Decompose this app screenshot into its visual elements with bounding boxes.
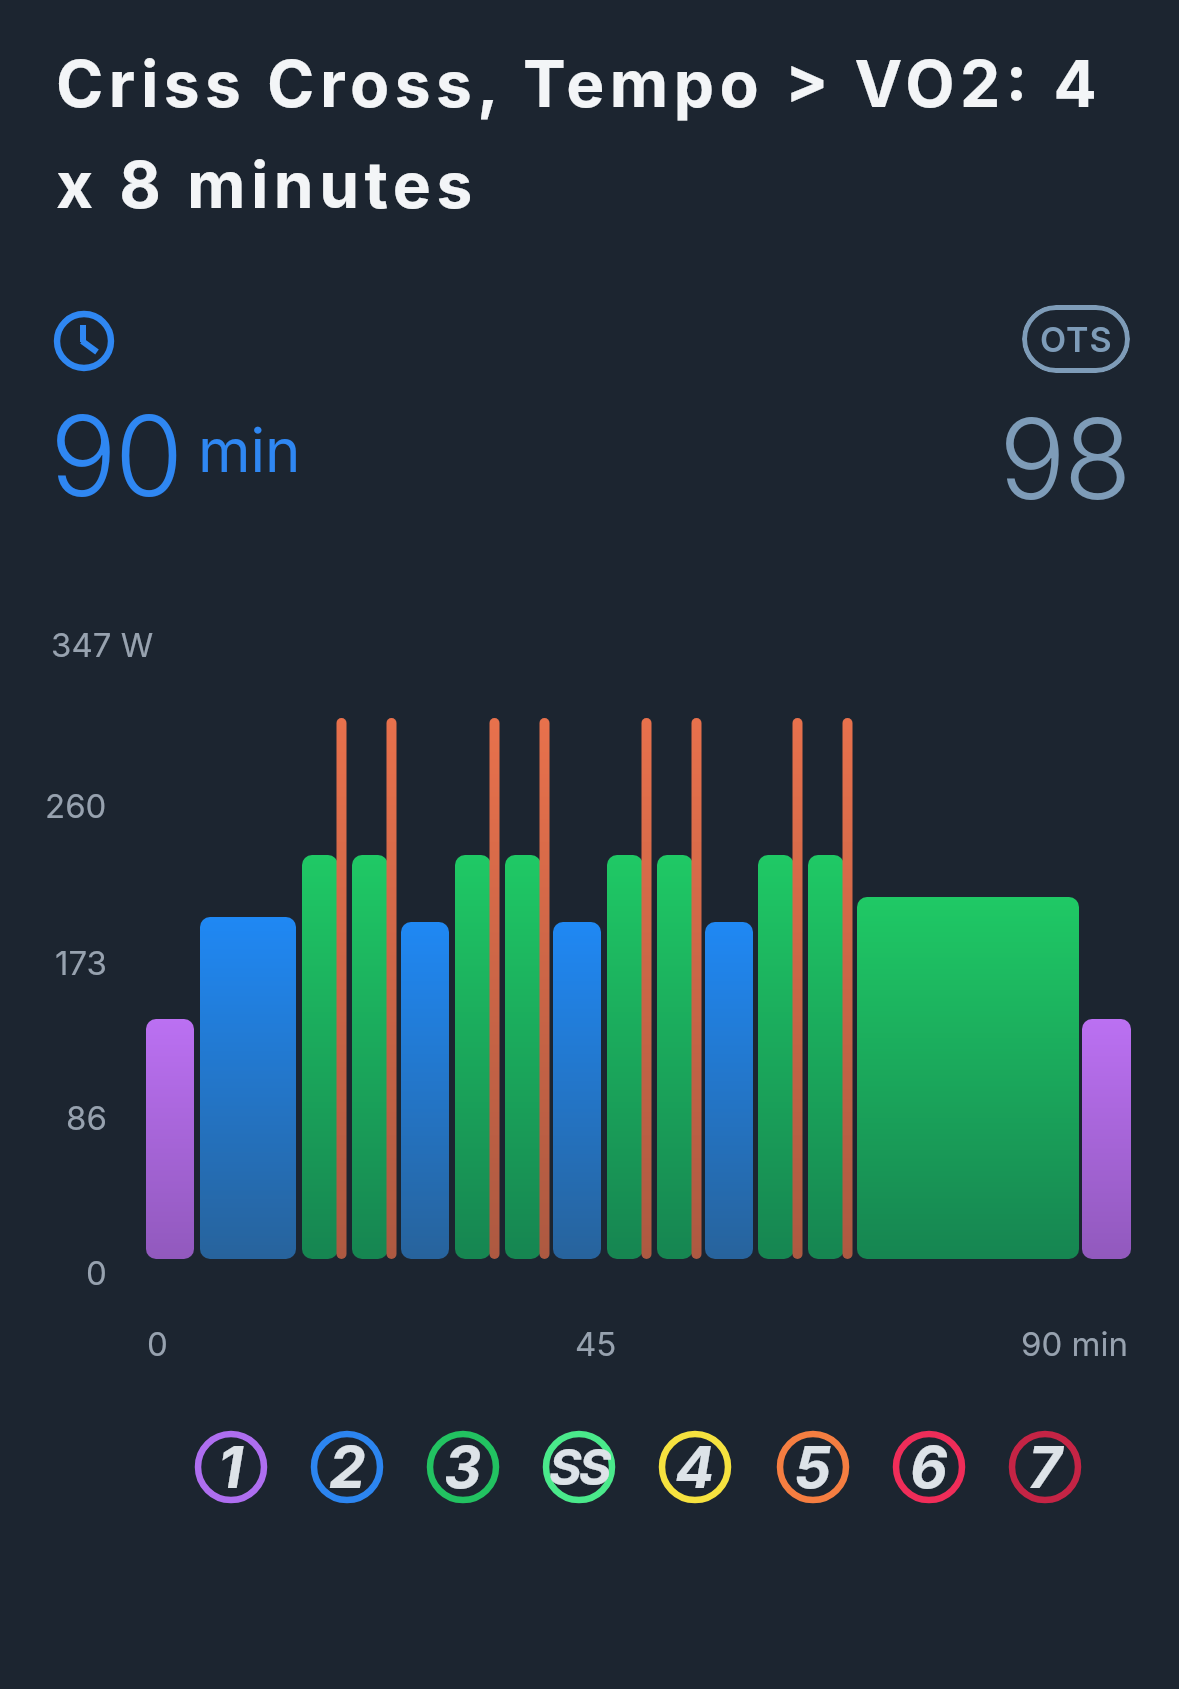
button[interactable]: 7 [1007, 1429, 1083, 1505]
staticText: 3 [444, 1432, 482, 1502]
staticText: 98 [999, 391, 1130, 525]
staticText: 5 [794, 1432, 832, 1502]
button[interactable]: 3 [425, 1429, 501, 1505]
staticText: 2 [329, 1432, 366, 1502]
staticText: 0 [147, 1324, 168, 1364]
staticText: 347 W [51, 625, 154, 665]
staticText: 6 [910, 1432, 948, 1502]
staticText: 7 [1028, 1432, 1062, 1502]
staticText: 1 [218, 1432, 244, 1502]
staticText: 90 min [1021, 1324, 1128, 1364]
staticText: 45 [575, 1324, 617, 1364]
staticText: 173 [55, 943, 107, 983]
button[interactable]: 90 [50, 388, 301, 522]
staticText: 90 [50, 388, 182, 522]
button[interactable]: 4 [657, 1429, 733, 1505]
button[interactable]: OTS [1022, 305, 1130, 373]
button[interactable]: 6 [891, 1429, 967, 1505]
button[interactable]: SS [541, 1429, 617, 1505]
staticText: 86 [66, 1098, 107, 1138]
staticText: Criss Cross, Tempo > VO2: 4 x 8 minutes [56, 45, 1103, 223]
staticText: SS [549, 1437, 609, 1497]
staticText: 0 [86, 1253, 107, 1293]
button[interactable]: 2 [309, 1429, 385, 1505]
staticText: 4 [675, 1432, 715, 1502]
button[interactable]: 5 [775, 1429, 851, 1505]
staticText: min [198, 414, 301, 487]
staticText: OTS [1040, 319, 1113, 360]
staticText: 260 [45, 786, 107, 826]
button[interactable]: 1 [193, 1429, 269, 1505]
